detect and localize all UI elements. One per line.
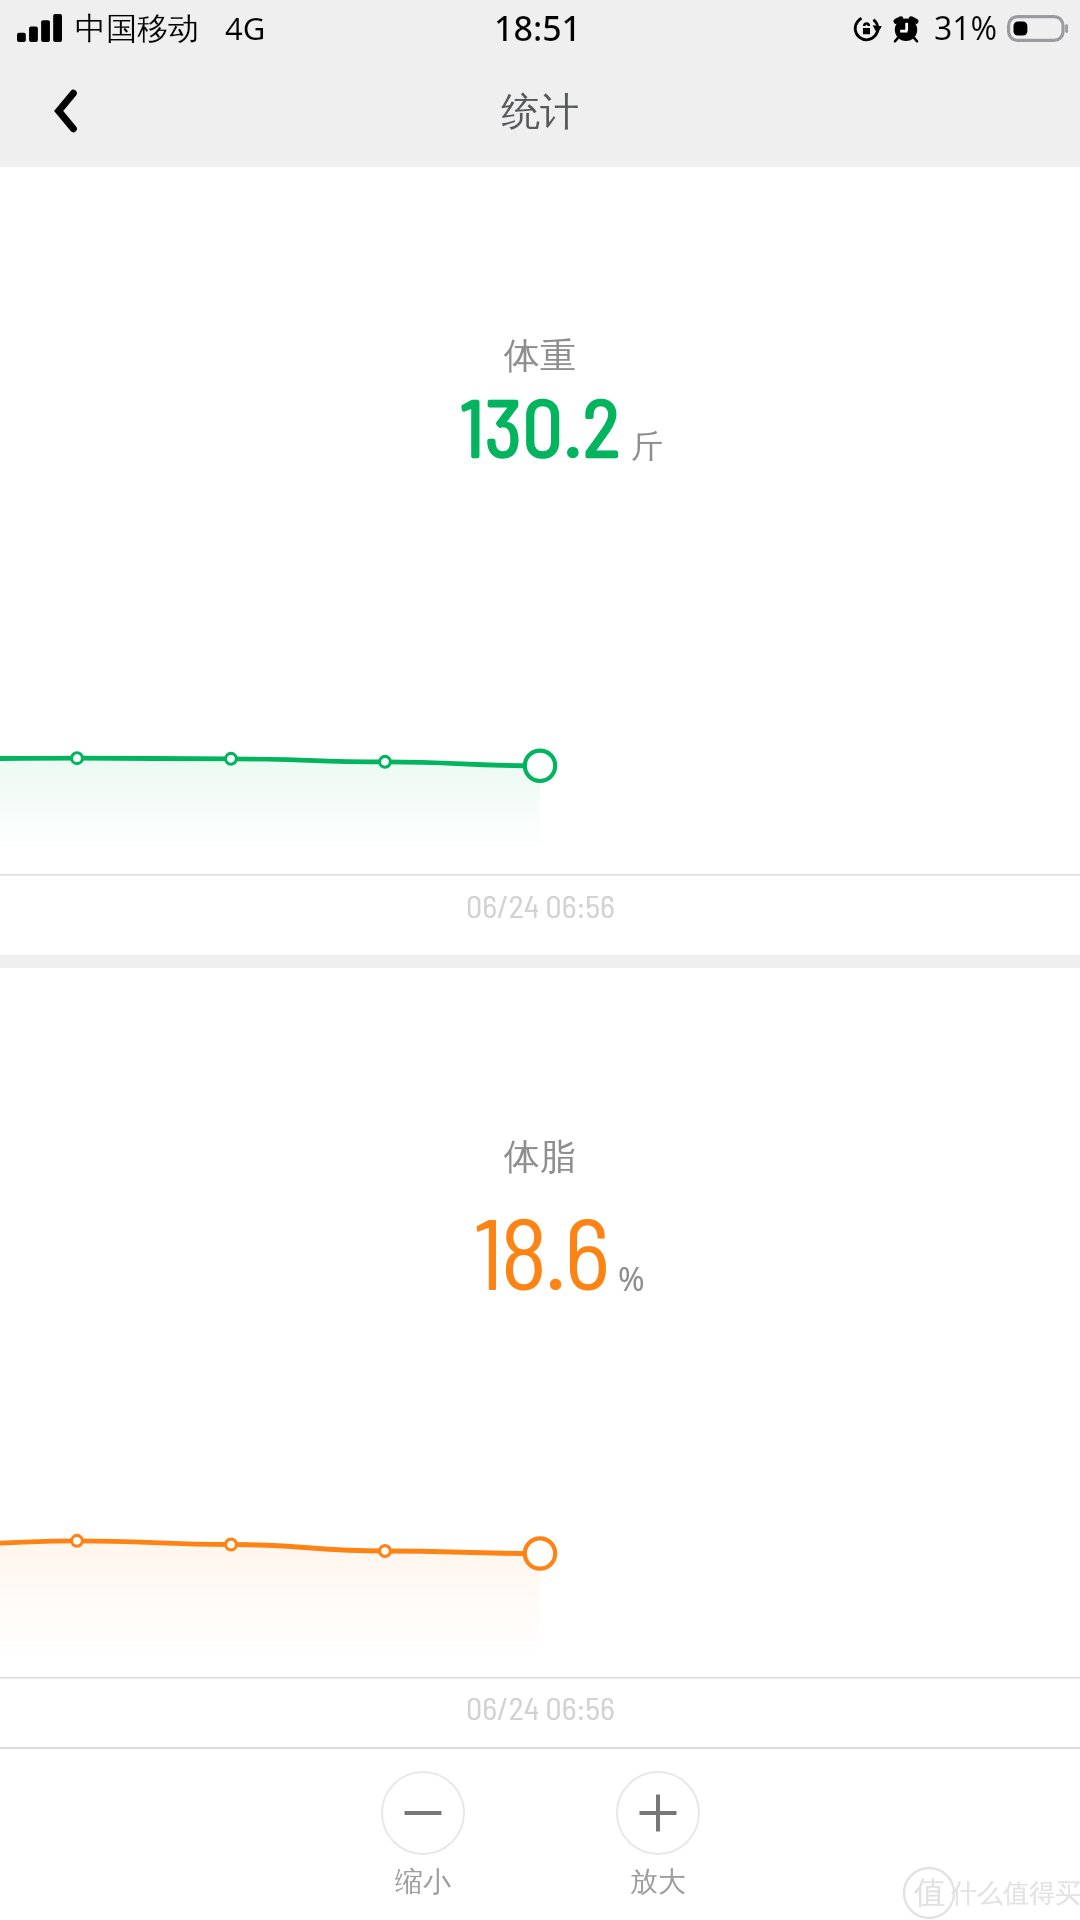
staticText: 缩小: [395, 1864, 451, 1899]
staticText: 4G: [225, 7, 266, 49]
staticText: 06/24 06:56: [466, 886, 615, 924]
staticText: 体重: [504, 333, 576, 378]
button[interactable]: Back: [0, 55, 130, 167]
staticText: 统计: [501, 87, 579, 136]
button[interactable]: Zoom in: [616, 1771, 700, 1899]
staticText: 中国移动: [75, 9, 199, 48]
staticText: 31%: [934, 6, 998, 50]
staticText: 体脂: [504, 1134, 576, 1179]
staticText: 斤: [631, 426, 663, 466]
staticText: 放大: [630, 1864, 686, 1899]
staticText: 18.6: [473, 1190, 607, 1310]
button[interactable]: Zoom out: [381, 1771, 465, 1899]
staticText: 值: [914, 1873, 945, 1912]
staticText: %: [618, 1257, 645, 1301]
staticText: 06/24 06:56: [466, 1688, 615, 1726]
staticText: 什么值得买: [951, 1877, 1080, 1910]
staticText: 130.2: [460, 377, 621, 473]
staticText: 18:51: [494, 5, 582, 51]
